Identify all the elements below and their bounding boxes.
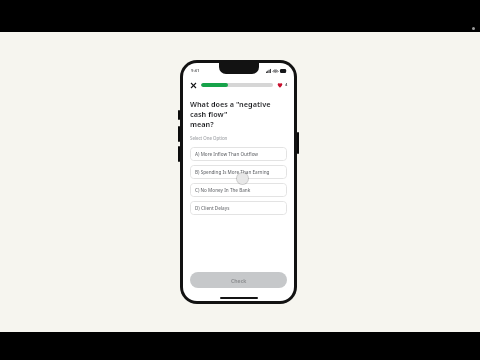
staticText: 4 bbox=[285, 82, 288, 88]
staticText: Select One Option bbox=[190, 135, 228, 141]
button[interactable]: Check bbox=[190, 272, 287, 288]
button[interactable]: C) No Money In The Bank bbox=[190, 183, 287, 197]
staticText: Check bbox=[231, 277, 247, 284]
staticText: What does a "negative cash flow" mean? bbox=[190, 99, 287, 129]
button[interactable]: Close bbox=[189, 81, 198, 90]
staticText: C) No Money In The Bank bbox=[195, 187, 251, 193]
staticText: D) Client Delays bbox=[195, 205, 230, 211]
button[interactable]: 4 bbox=[277, 82, 288, 88]
button[interactable]: D) Client Delays bbox=[190, 201, 287, 215]
staticText: 9:41 bbox=[191, 68, 200, 74]
button[interactable]: A) More Inflow Than Outflow bbox=[190, 147, 287, 161]
button[interactable]: B) Spending Is More Than Earning bbox=[190, 165, 287, 179]
staticText: A) More Inflow Than Outflow bbox=[195, 151, 259, 157]
staticText: B) Spending Is More Than Earning bbox=[195, 169, 270, 175]
